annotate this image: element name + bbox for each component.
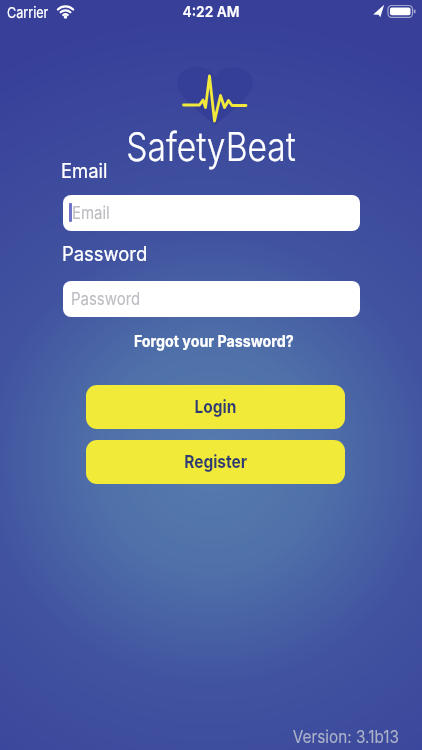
- staticText: Email: [72, 203, 110, 224]
- staticText: Carrier: [7, 3, 49, 21]
- staticText: Email: [61, 159, 108, 183]
- staticText: SafetyBeat: [34, 122, 388, 170]
- staticText: Password: [71, 289, 140, 310]
- button[interactable]: Login: [86, 385, 345, 429]
- button[interactable]: Forgot your Password?: [124, 331, 304, 350]
- staticText: 4:22 AM: [17, 2, 405, 20]
- staticText: Version: 3.1b13: [293, 727, 399, 748]
- button[interactable]: Register: [86, 440, 345, 484]
- staticText: Login: [194, 396, 236, 418]
- staticText: Register: [184, 451, 248, 473]
- button[interactable]: Email: [63, 195, 360, 231]
- staticText: Forgot your Password?: [134, 331, 294, 350]
- staticText: Password: [62, 242, 148, 266]
- button[interactable]: Password: [63, 281, 360, 317]
